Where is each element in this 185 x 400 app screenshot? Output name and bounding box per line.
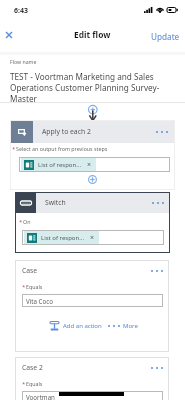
staticText: Apply to each 2 (42, 127, 91, 136)
button[interactable]: More options (146, 196, 170, 210)
staticText: Case (22, 266, 38, 275)
staticText: * (19, 218, 23, 226)
staticText: Flow name (10, 58, 37, 65)
button[interactable]: List of respon... (21, 158, 96, 171)
button[interactable]: Close (1, 27, 16, 42)
button[interactable]: Update (143, 28, 185, 45)
staticText: List of respon... (38, 161, 82, 169)
staticText: Update (151, 31, 180, 42)
staticText: Switch (45, 198, 66, 207)
button[interactable]: List of respon... (24, 231, 99, 244)
button[interactable]: More (108, 322, 138, 330)
staticText: Equals (26, 380, 43, 387)
staticText: List of respon... (41, 234, 85, 242)
staticText: × (87, 160, 92, 170)
staticText: TEST - Voortman Marketing and Sales Oper… (10, 71, 175, 104)
staticText: Equals (26, 283, 43, 290)
staticText: Case 2 (22, 363, 43, 372)
staticText: On (23, 218, 31, 225)
staticText: Vita Coco (26, 297, 53, 305)
button[interactable]: Apply to each 2 (10, 120, 175, 143)
button[interactable]: Add step (86, 173, 98, 185)
staticText: Add an action (63, 322, 102, 330)
button[interactable]: More options (149, 124, 175, 140)
staticText: More (123, 322, 138, 330)
staticText: Edit flow (74, 29, 111, 40)
staticText: * (22, 283, 26, 291)
staticText: × (90, 233, 95, 243)
button[interactable]: Switch (15, 192, 170, 213)
button[interactable]: Add an action (50, 321, 102, 331)
button[interactable]: More options (149, 268, 165, 274)
staticText: * (12, 145, 16, 153)
staticText: Select an output from previous steps (16, 145, 108, 152)
staticText: 6:43 (14, 6, 28, 16)
button[interactable]: More options (149, 365, 165, 371)
staticText: Voortman (26, 393, 55, 400)
staticText: * (22, 380, 26, 388)
